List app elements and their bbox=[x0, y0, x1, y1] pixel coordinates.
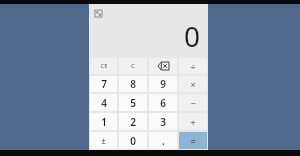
staticText: CE bbox=[100, 62, 108, 70]
button[interactable]: 3 bbox=[149, 113, 177, 130]
staticText: 5 bbox=[130, 96, 136, 110]
button[interactable]: 7 bbox=[90, 76, 117, 92]
button[interactable]: CE bbox=[90, 58, 117, 74]
staticText: C bbox=[131, 62, 135, 70]
button[interactable]: . bbox=[149, 132, 177, 149]
button[interactable]: Menu bbox=[94, 9, 103, 18]
button[interactable]: − bbox=[179, 94, 207, 111]
staticText: × bbox=[190, 78, 196, 90]
staticText: 8 bbox=[130, 77, 136, 91]
staticText: = bbox=[190, 135, 196, 147]
staticText: 7 bbox=[101, 77, 107, 91]
button[interactable]: + bbox=[179, 113, 207, 130]
staticText: 1 bbox=[101, 115, 107, 129]
staticText: 2 bbox=[130, 115, 136, 129]
button[interactable]: 0 bbox=[119, 132, 147, 149]
button[interactable]: 5 bbox=[119, 94, 147, 111]
staticText: . bbox=[162, 134, 165, 148]
staticText: 0 bbox=[130, 134, 136, 148]
button[interactable]: ÷ bbox=[179, 58, 207, 74]
button[interactable]: 2 bbox=[119, 113, 147, 130]
staticText: 6 bbox=[160, 96, 166, 110]
staticText: ± bbox=[101, 135, 106, 146]
button[interactable]: 9 bbox=[149, 76, 177, 92]
button[interactable]: 6 bbox=[149, 94, 177, 111]
button[interactable]: 1 bbox=[90, 113, 117, 130]
staticText: + bbox=[190, 116, 196, 128]
staticText: 0 bbox=[183, 17, 200, 55]
staticText: 4 bbox=[101, 96, 107, 110]
button[interactable]: 4 bbox=[90, 94, 117, 111]
button[interactable]: C bbox=[119, 58, 147, 74]
staticText: 9 bbox=[160, 77, 166, 91]
button[interactable]: 8 bbox=[119, 76, 147, 92]
staticText: ÷ bbox=[190, 60, 196, 72]
button[interactable]: × bbox=[179, 76, 207, 92]
staticText: − bbox=[190, 97, 196, 109]
button[interactable]: ± bbox=[90, 132, 117, 149]
staticText: 3 bbox=[160, 115, 166, 129]
button[interactable]: = bbox=[179, 132, 207, 149]
button[interactable]: Backspace bbox=[149, 58, 177, 74]
